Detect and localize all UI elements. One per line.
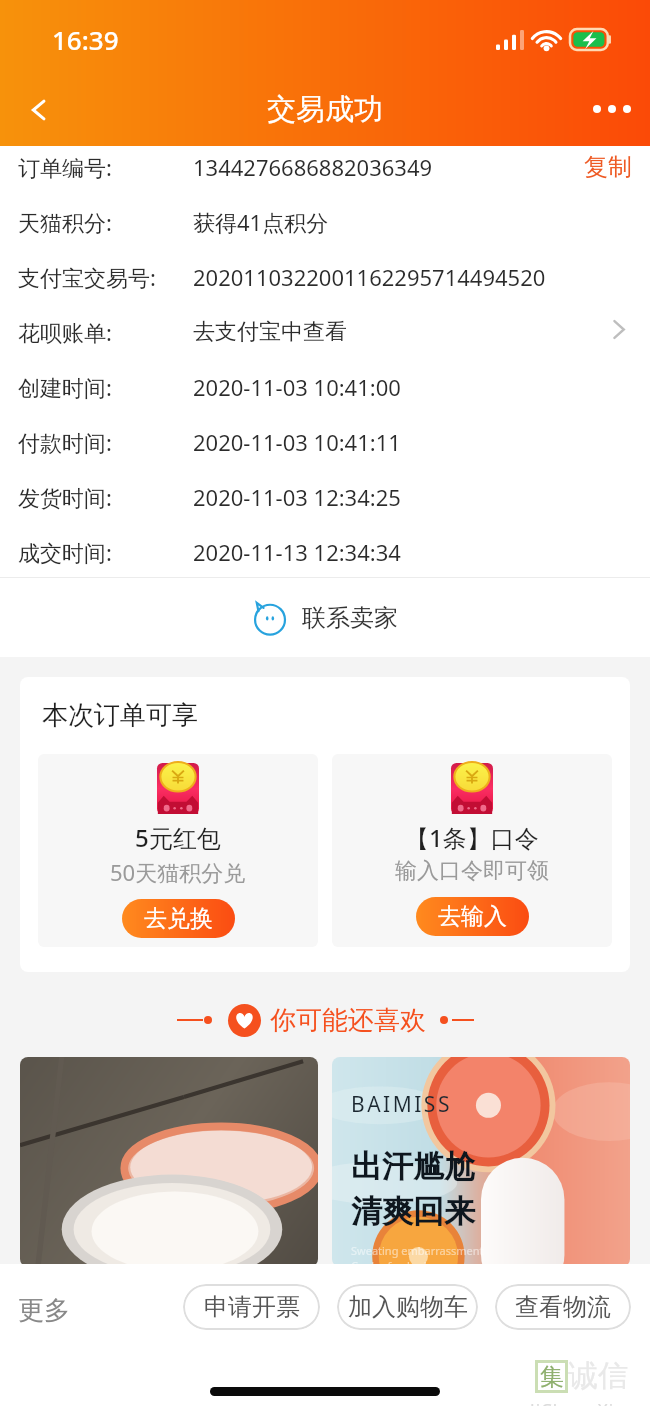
staticText: 查看物流 [515,1292,611,1322]
staticText: 创建时间: [18,372,112,402]
button[interactable]: 【1条】口令 [332,754,612,947]
button[interactable]: 花呗账单: [0,304,650,359]
button[interactable]: 查看物流 [495,1284,631,1330]
staticText: 订单编号: [18,152,112,182]
staticText: 去兑换 [144,904,213,933]
staticText: 天猫积分: [18,207,112,237]
button[interactable]: 联系卖家 [0,578,650,657]
button[interactable]: 加入购物车 [337,1284,478,1330]
staticText: 你可能还喜欢 [270,1004,426,1037]
staticText: 2020-11-03 10:41:00 [193,372,401,402]
staticText: 花呗账单: [18,317,112,347]
staticText: 发货时间: [18,482,112,512]
staticText: 1344276686882036349 [193,152,433,182]
staticText: 诚信 [568,1357,628,1395]
staticText: 申请开票 [204,1292,300,1322]
staticText: 获得41点积分 [193,207,329,237]
staticText: 清爽回来 [351,1192,475,1231]
button[interactable]: 成交时间: [0,524,650,579]
staticText: JiChengXin.com [530,1398,650,1406]
button[interactable] [20,1057,318,1267]
staticText: Sweating embarrassment [351,1243,484,1258]
staticText: Cool refreshed [351,1258,427,1267]
staticText: BAIMISS [351,1090,452,1119]
button[interactable]: 发货时间: [0,469,650,524]
staticText: 出汗尴尬 [351,1147,475,1186]
staticText: 2020-11-13 12:34:34 [193,537,401,567]
button[interactable]: 更多 [18,1294,70,1327]
staticText: 支付宝交易号: [18,262,156,292]
button[interactable]: 创建时间: [0,359,650,414]
button[interactable]: 付款时间: [0,414,650,469]
button[interactable]: 5元红包 [38,754,318,947]
staticText: 输入口令即可领 [395,857,549,885]
staticText: 本次订单可享 [42,699,198,732]
staticText: 集 [540,1362,564,1392]
button[interactable]: 申请开票 [183,1284,320,1330]
button[interactable]: BAIMISS [332,1057,630,1267]
staticText: 付款时间: [18,427,112,457]
button[interactable]: 订单编号: [0,139,650,194]
staticText: 加入购物车 [348,1292,468,1322]
staticText: 去输入 [438,902,507,931]
staticText: 去支付宝中查看 [193,318,347,346]
staticText: 成交时间: [18,537,112,567]
staticText: 16:39 [52,22,119,57]
staticText: 5元红包 [135,821,221,854]
button[interactable]: 去输入 [416,897,529,936]
staticText: 交易成功 [267,91,383,128]
button[interactable]: 支付宝交易号: [0,249,650,304]
button[interactable]: 去兑换 [122,899,235,938]
staticText: 2020-11-03 12:34:25 [193,482,401,512]
button[interactable]: 你可能还喜欢 [0,997,650,1043]
button[interactable]: 天猫积分: [0,194,650,249]
staticText: 联系卖家 [302,603,398,633]
staticText: 【1条】口令 [405,821,539,854]
button[interactable]: More options [584,79,650,145]
button[interactable]: Back [0,79,66,145]
staticText: 复制 [584,152,632,182]
button[interactable]: 复制 [566,139,650,194]
staticText: 50天猫积分兑 [110,857,246,887]
staticText: 2020110322001162295714494520 [193,262,546,292]
staticText: 2020-11-03 10:41:11 [193,427,401,457]
